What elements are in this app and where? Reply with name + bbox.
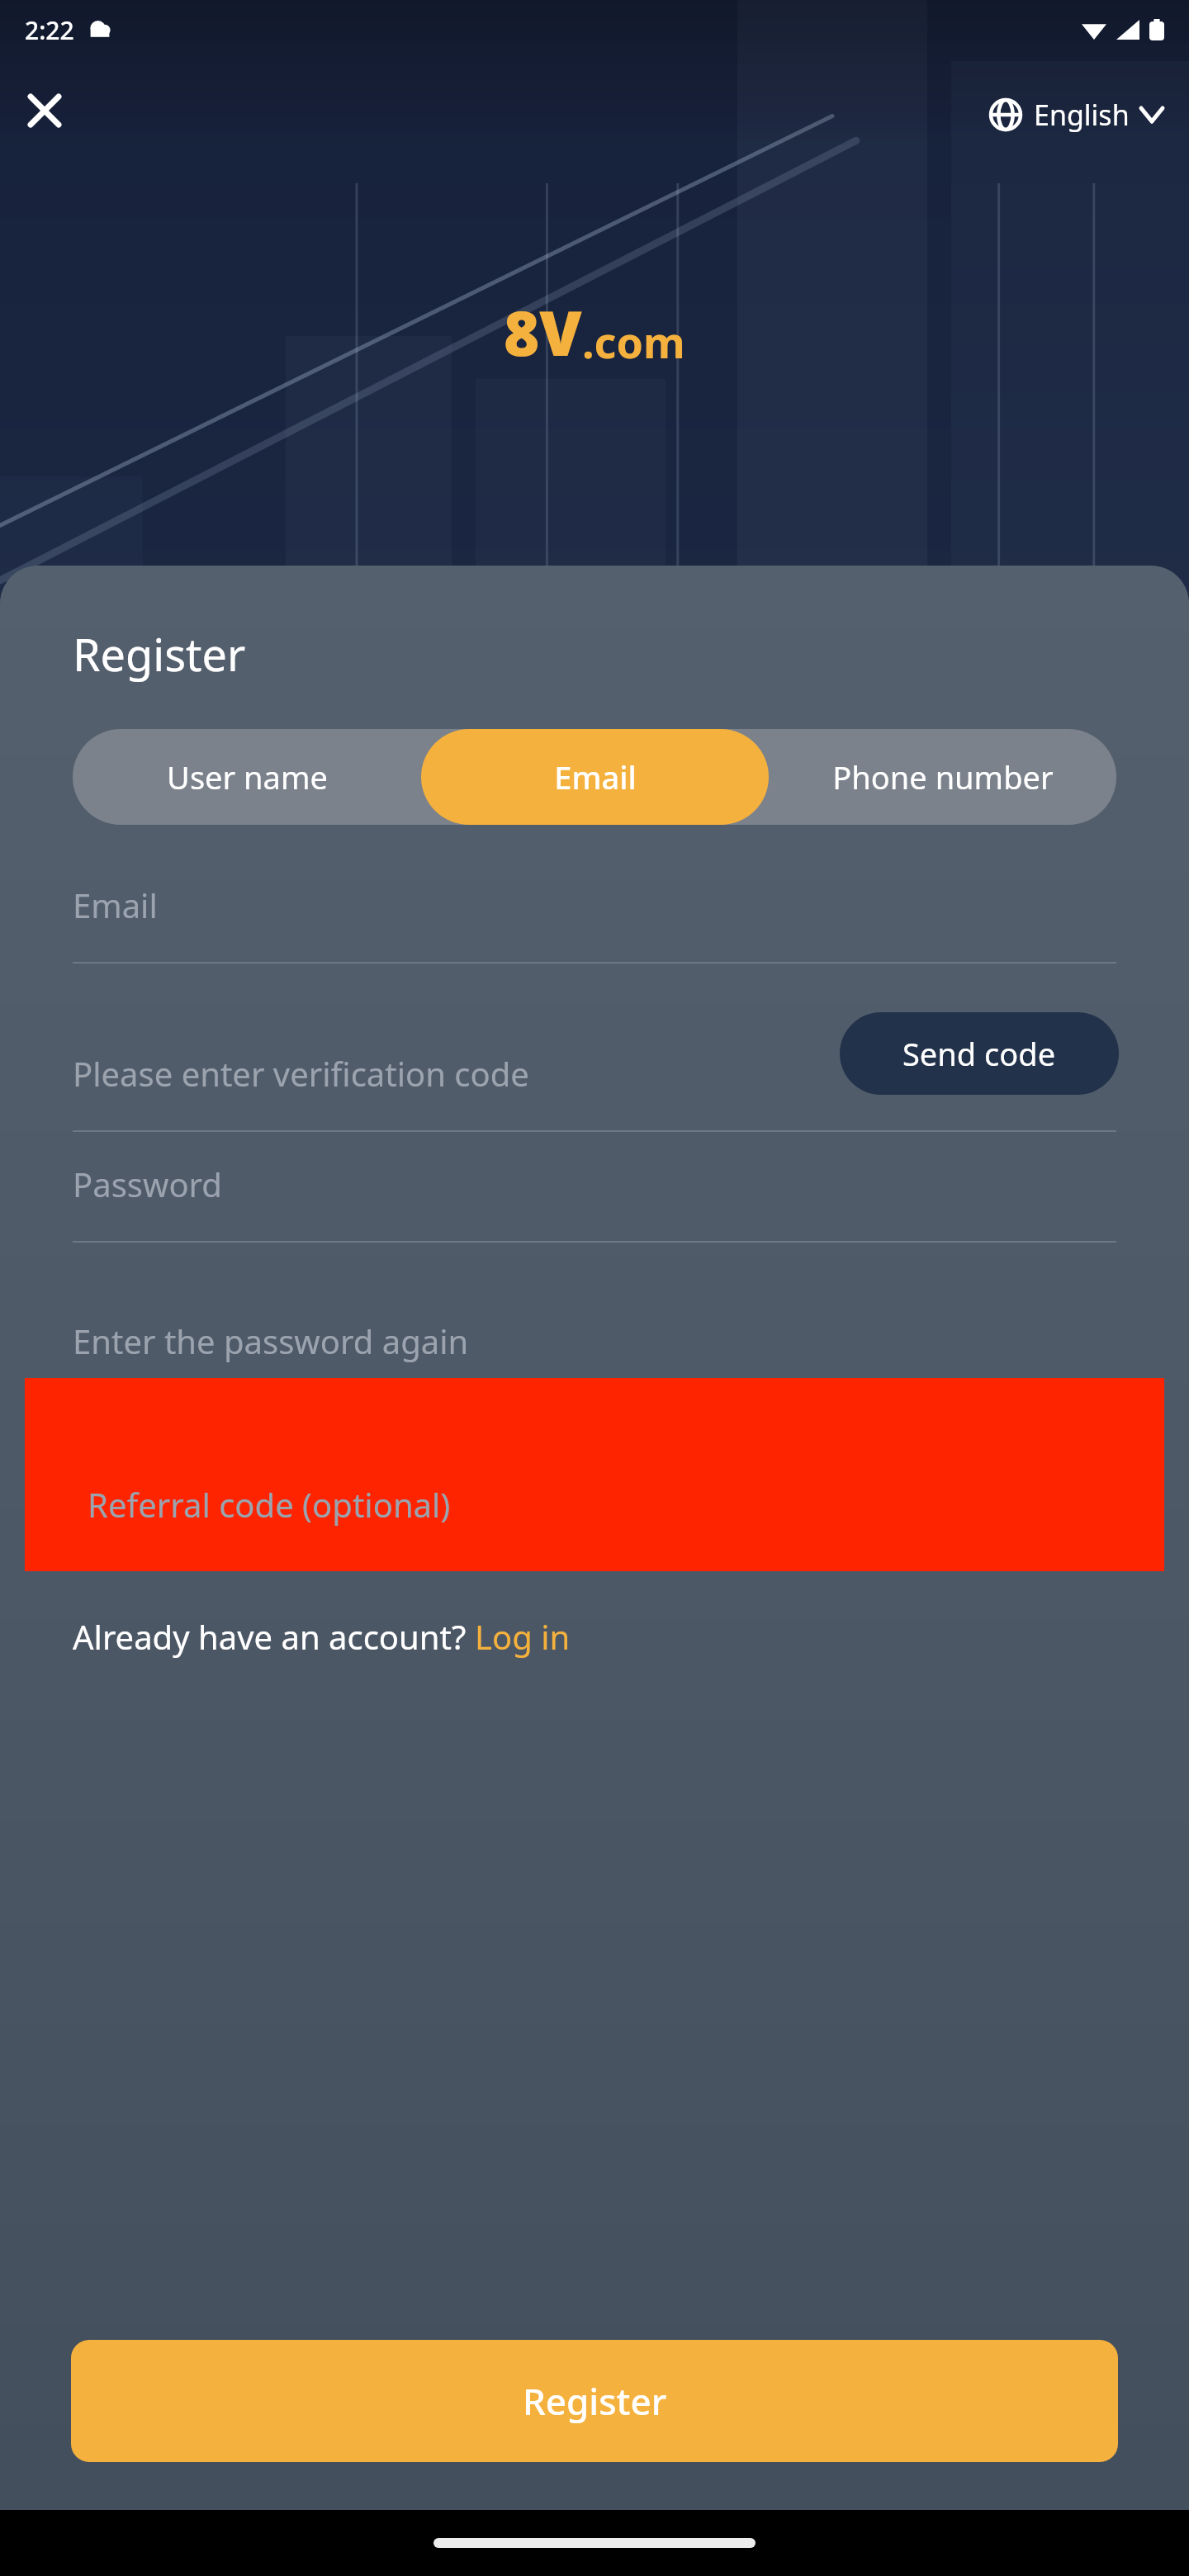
button[interactable]: Send code [840, 1012, 1119, 1095]
staticText: Please enter verification code [73, 1051, 529, 1096]
staticText: .com [582, 312, 685, 371]
button[interactable]: Close [17, 83, 73, 139]
staticText: 2:22 [25, 13, 74, 47]
staticText: English [1034, 96, 1130, 134]
staticText: User name [167, 755, 328, 798]
staticText: Enter the password again [73, 1319, 469, 1363]
staticText: Register [73, 623, 246, 684]
button[interactable]: Phone number [769, 729, 1116, 825]
button[interactable]: User name [73, 729, 421, 825]
staticText: Already have an account? [73, 1614, 475, 1659]
button[interactable]: Referral code (optional) [40, 1393, 1149, 1556]
button[interactable]: English [981, 89, 1171, 140]
staticText: 8V [504, 291, 582, 374]
button[interactable]: Register [71, 2340, 1118, 2462]
staticText: Register [523, 2376, 667, 2426]
staticText: Phone number [832, 755, 1054, 798]
button[interactable]: Email [421, 729, 769, 825]
staticText: Referral code (optional) [88, 1482, 451, 1527]
button[interactable]: Already have an account? [73, 1614, 571, 1659]
staticText: Log in [475, 1614, 571, 1659]
staticText: Password [73, 1162, 222, 1206]
staticText: Send code [902, 1032, 1056, 1075]
staticText: Email [554, 755, 637, 798]
staticText: Email [73, 883, 158, 927]
